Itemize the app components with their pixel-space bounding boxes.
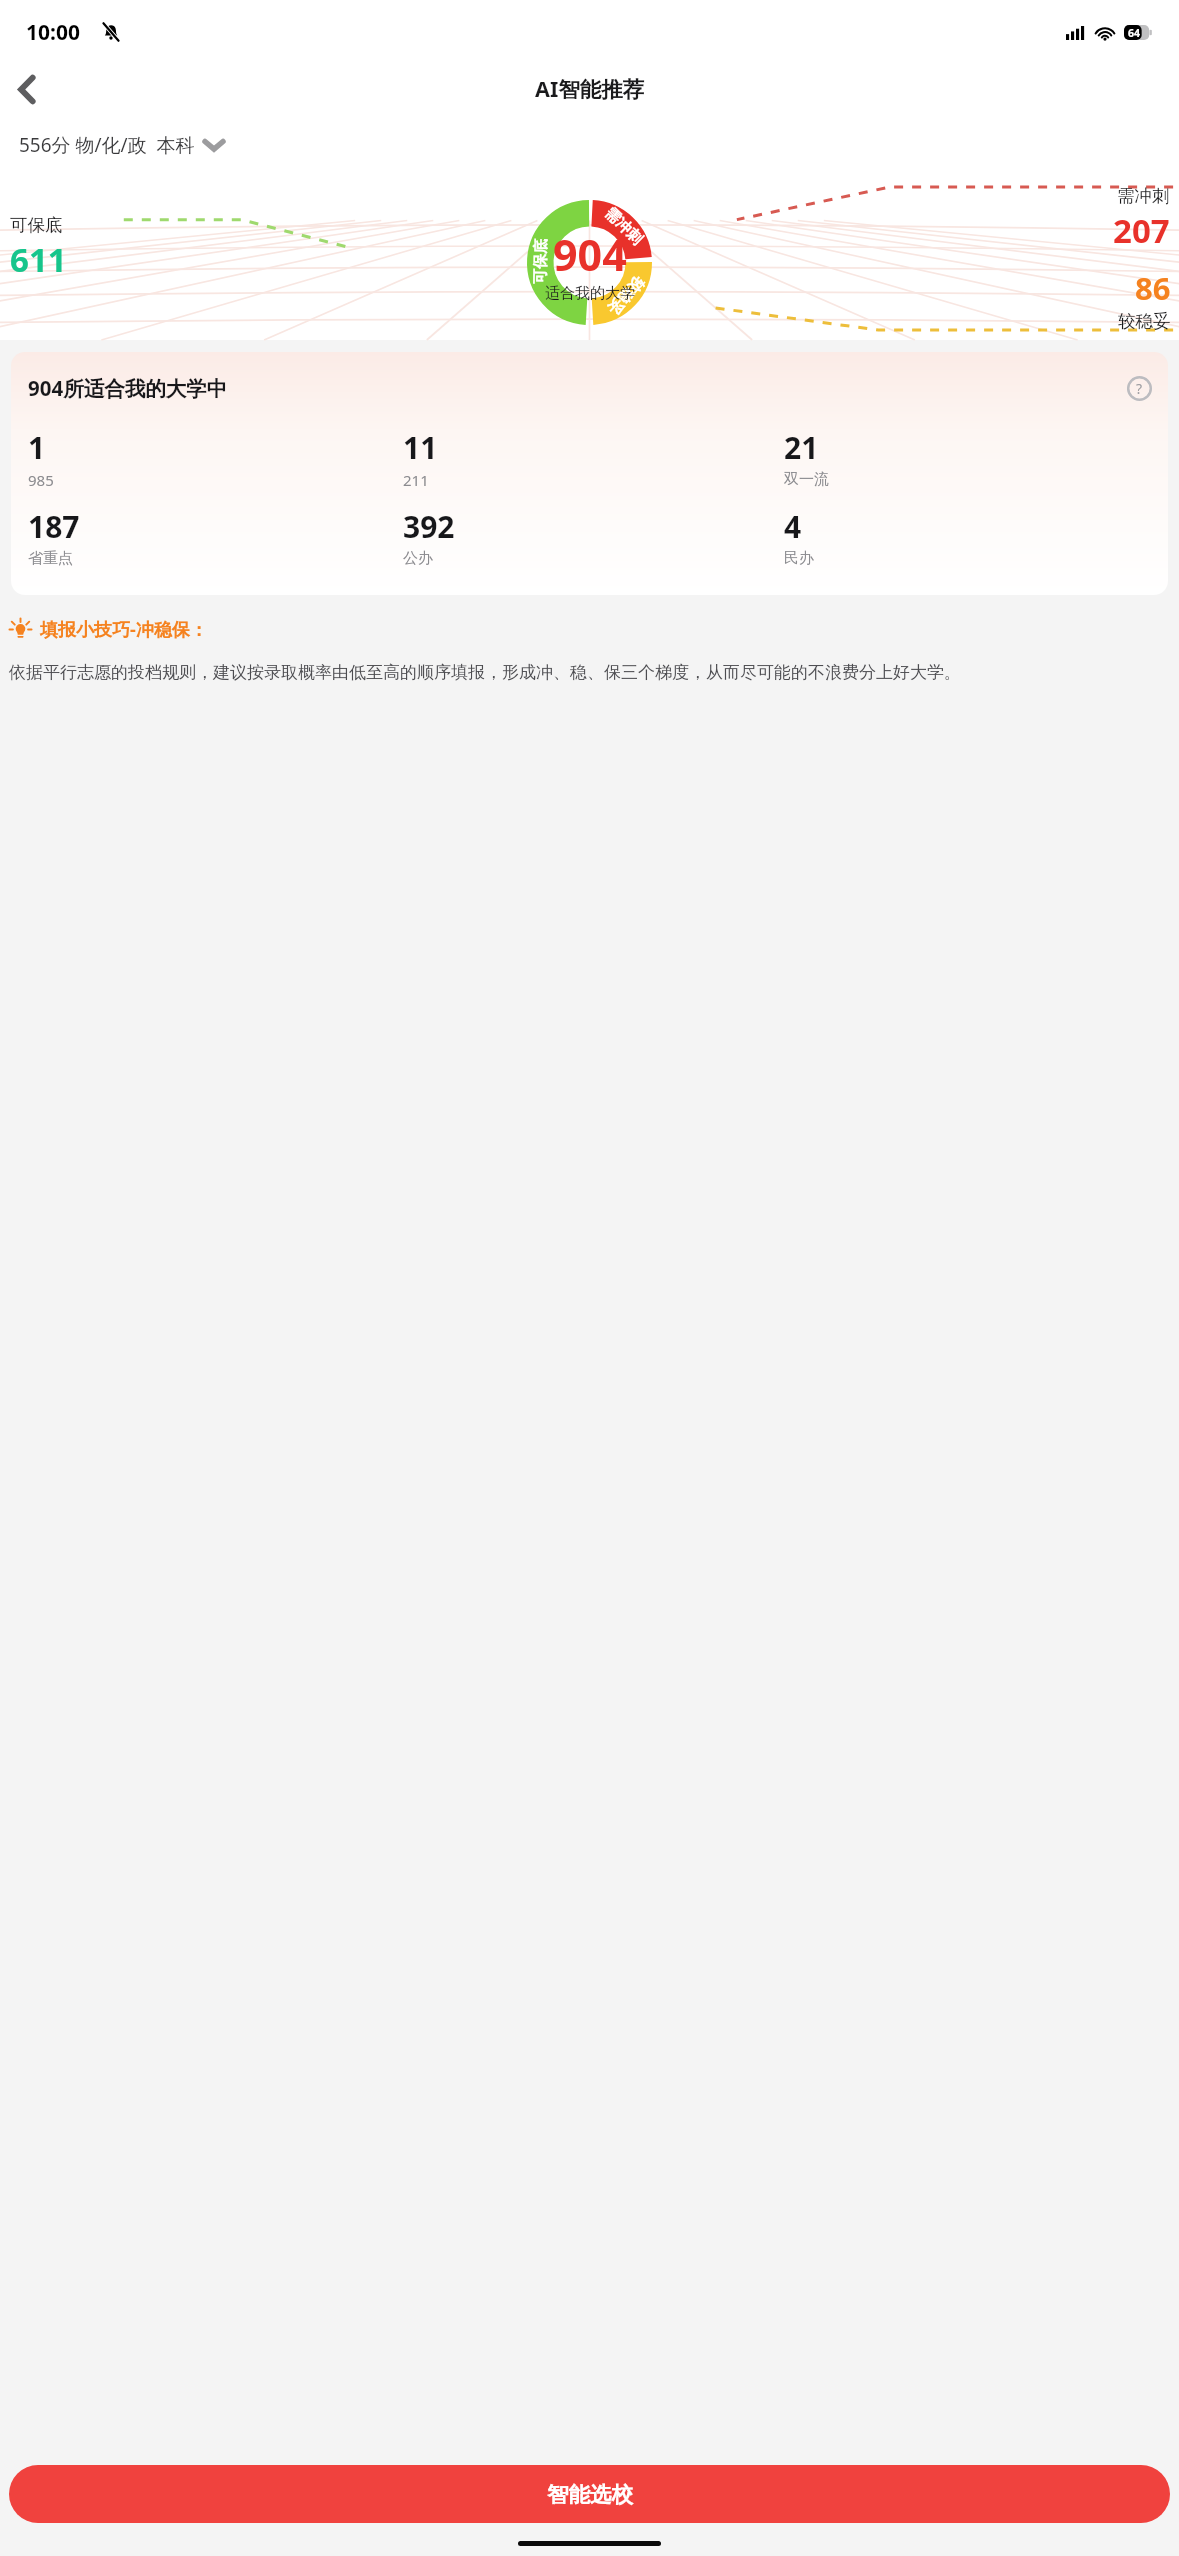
staticText: 依据平行志愿的投档规则，建议按录取概率由低至高的顺序填报，形成冲、稳、保三个梯度… [9,662,961,683]
button[interactable]: 返回 [3,65,51,113]
staticText: 需冲刺 [601,204,646,249]
staticText: 智能选校 [547,2481,633,2508]
staticText: 适合我的大学 [545,284,635,303]
staticText: 公办 [403,549,433,568]
staticText: 392 [403,506,455,547]
staticText: 可保底 [531,239,550,284]
button[interactable]: 智能选校 [9,2465,1170,2523]
staticText: 211 [403,470,429,490]
staticText: 较稳妥 [1118,310,1171,332]
staticText: 省重点 [28,549,73,568]
staticText: 904 [553,225,627,284]
staticText: 11 [403,427,438,468]
button[interactable]: 556分 物/化/政 本科 [11,127,231,163]
staticText: 21 [784,427,819,468]
staticText: 4 [784,506,802,547]
staticText: 较稳妥 [603,273,648,318]
staticText: 207 [1113,208,1170,253]
staticText: 民办 [784,549,814,568]
staticText: 904所适合我的大学中 [28,374,228,402]
staticText: 611 [10,237,67,282]
staticText: 1 [28,427,46,468]
staticText: 10:00 [26,18,80,47]
button[interactable]: 帮助说明 [1123,372,1155,404]
staticText: 187 [28,506,80,547]
staticText: 86 [1135,267,1171,309]
staticText: ? [1136,379,1143,398]
staticText: AI智能推荐 [535,74,645,103]
staticText: 985 [28,470,54,490]
staticText: 64 [1128,26,1141,40]
staticText: 需冲刺 [1117,185,1170,207]
staticText: 双一流 [784,470,829,489]
staticText: 556分 物/化/政 本科 [19,132,195,158]
staticText: 填报小技巧-冲稳保： [40,617,208,642]
staticText: 可保底 [10,214,63,236]
